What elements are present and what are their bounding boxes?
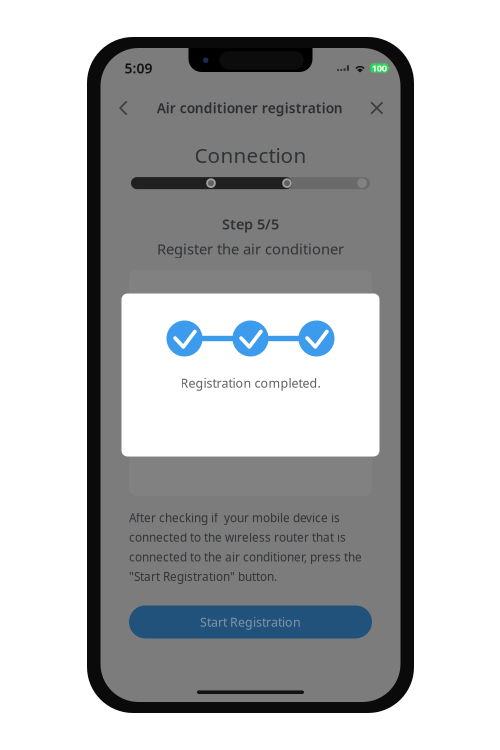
staticText: connected to the wireless router that is (129, 529, 346, 545)
button[interactable]: Back (107, 90, 139, 126)
button[interactable]: Close (360, 90, 393, 126)
staticText: Register the air conditioner (157, 239, 344, 259)
staticText: Start Registration (200, 613, 301, 630)
staticText: After checking if your mobile device is (129, 510, 340, 526)
button[interactable]: Start Registration (129, 605, 372, 638)
staticText: Registration completed. (180, 374, 320, 391)
staticText: connected to the air conditioner, press … (129, 549, 362, 565)
staticText: 5:09 (124, 59, 152, 77)
staticText: Air conditioner registration (157, 99, 343, 117)
staticText: Connection (194, 141, 306, 169)
staticText: 100 (372, 62, 387, 74)
staticText: "Start Registration" button. (129, 568, 277, 584)
staticText: Step 5/5 (222, 214, 279, 234)
